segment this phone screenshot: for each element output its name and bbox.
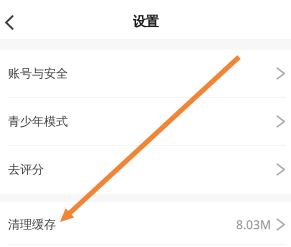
staticText: 8.03M: [236, 216, 271, 232]
button[interactable]: 账号与安全: [0, 50, 291, 98]
staticText: 去评分: [8, 162, 44, 177]
button[interactable]: 去评分: [0, 146, 291, 194]
staticText: 账号与安全: [8, 66, 68, 81]
button[interactable]: Back: [0, 1, 23, 37]
staticText: 青少年模式: [8, 114, 68, 129]
staticText: 清理缓存: [8, 217, 56, 232]
staticText: 设置: [132, 13, 158, 30]
button[interactable]: 清理缓存: [0, 202, 291, 245]
button[interactable]: 青少年模式: [0, 98, 291, 146]
